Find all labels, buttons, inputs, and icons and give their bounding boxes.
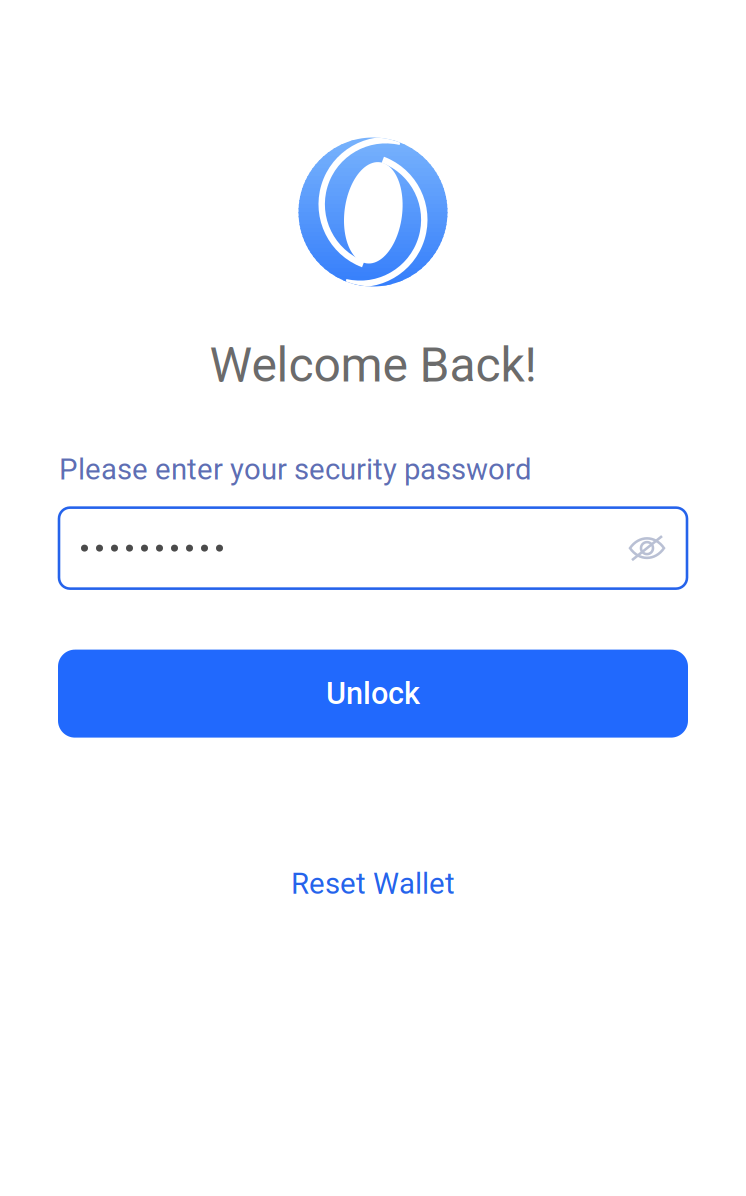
button[interactable]: Reset Wallet [291, 867, 455, 901]
staticText: Welcome Back! [209, 337, 536, 393]
button[interactable]: Unlock [58, 650, 688, 738]
staticText: Unlock [326, 676, 420, 712]
staticText: Please enter your security password [59, 452, 532, 487]
staticText: Reset Wallet [291, 867, 455, 901]
